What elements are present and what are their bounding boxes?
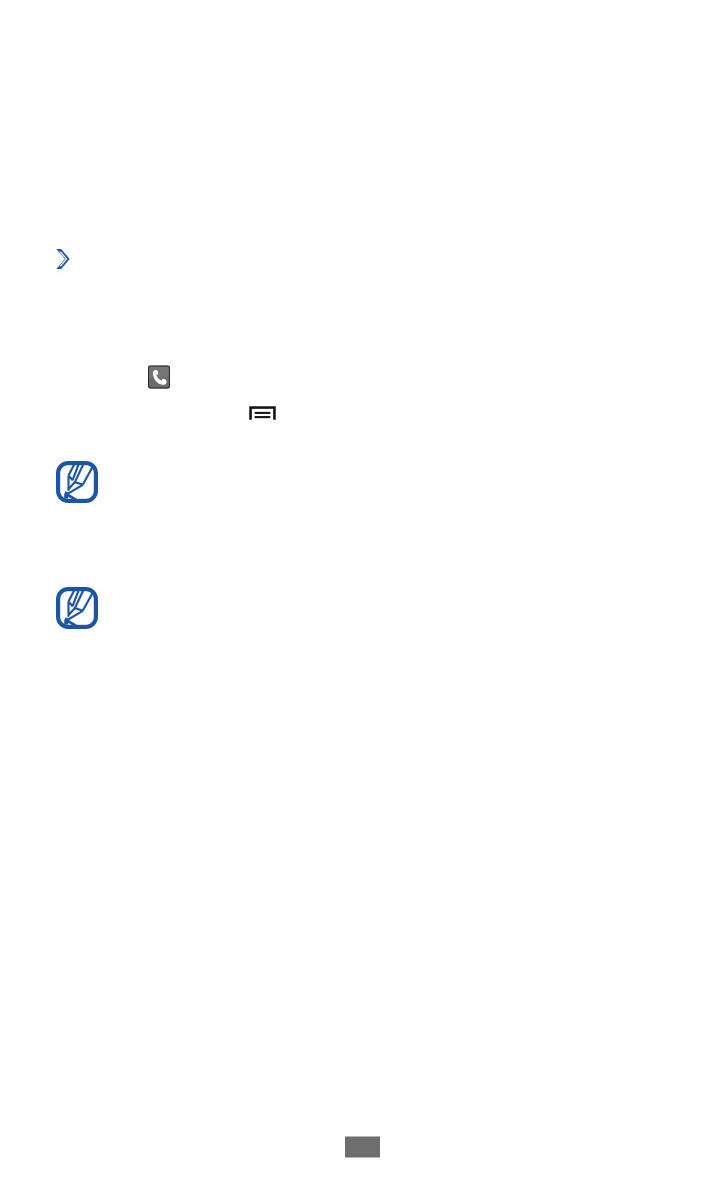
button[interactable]: Menu key [249, 406, 276, 420]
button[interactable]: Next step [56, 249, 70, 269]
button[interactable]: Phone [148, 365, 170, 388]
button[interactable]: Note [56, 587, 98, 629]
button[interactable]: Note [56, 461, 98, 503]
